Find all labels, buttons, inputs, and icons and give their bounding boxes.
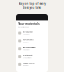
button[interactable]: Summary notes xyxy=(16,60,48,68)
staticText: class you take xyxy=(22,6,41,9)
staticText: 8 pages xyxy=(23,41,29,43)
button[interactable]: Worked examples xyxy=(16,45,48,53)
staticText: 12 pages xyxy=(23,33,30,35)
staticText: Practice set xyxy=(23,54,33,56)
staticText: Your materials xyxy=(18,22,39,26)
button[interactable]: Introduction xyxy=(16,29,48,37)
staticText: Introduction xyxy=(23,31,33,33)
staticText: 15 pages xyxy=(23,49,30,51)
staticText: Key concepts xyxy=(23,39,34,41)
staticText: 6 pages xyxy=(23,65,29,66)
button[interactable]: Practice set xyxy=(16,53,48,60)
staticText: Stay on top of every xyxy=(18,2,45,5)
button[interactable]: Key concepts xyxy=(16,37,48,45)
staticText: Recently added xyxy=(18,26,29,28)
staticText: 21 questions xyxy=(23,57,32,59)
staticText: Summary notes xyxy=(23,62,35,64)
staticText: Worked examples xyxy=(23,47,36,48)
